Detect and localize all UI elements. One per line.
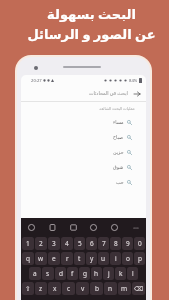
button[interactable]: More options — [131, 223, 140, 232]
button[interactable]: i — [110, 252, 121, 265]
button[interactable]: شوق — [21, 160, 146, 175]
staticText: 84% — [129, 78, 138, 84]
staticText: l — [132, 269, 134, 278]
staticText: 9 — [126, 239, 130, 248]
staticText: ابحث في المحادثات — [89, 90, 128, 97]
staticText: 7 — [102, 239, 106, 248]
staticText: حب — [116, 180, 124, 186]
staticText: q — [26, 254, 30, 263]
staticText: 3 — [52, 239, 56, 248]
button[interactable]: 8 — [110, 237, 121, 250]
staticText: 20:27 — [31, 78, 42, 84]
button[interactable]: 1 — [22, 237, 34, 250]
button[interactable]: 2 — [35, 237, 47, 250]
staticText: ⌫ — [134, 285, 144, 293]
button[interactable]: v — [76, 282, 89, 295]
button[interactable]: l — [127, 267, 138, 280]
button[interactable]: حزين — [21, 145, 146, 160]
staticText: 6 — [90, 239, 94, 248]
staticText: i — [115, 254, 117, 263]
button[interactable]: 7 — [98, 237, 109, 250]
button[interactable]: Keyboard tool — [89, 223, 98, 232]
button[interactable]: j — [103, 267, 114, 280]
button[interactable]: مساء — [21, 115, 146, 130]
button[interactable]: Keyboard tool — [110, 223, 119, 232]
button[interactable]: Keyboard tool — [48, 223, 57, 232]
staticText: شوق — [113, 165, 124, 171]
staticText: 5 — [78, 239, 82, 248]
staticText: البحث بسهولة — [47, 5, 136, 23]
button[interactable]: صباح — [21, 130, 146, 145]
staticText: a — [33, 269, 37, 278]
staticText: ⇧ — [25, 285, 31, 293]
button[interactable]: ⌫ — [132, 282, 145, 295]
button[interactable]: 0 — [134, 237, 145, 250]
staticText: m — [121, 284, 128, 293]
button[interactable]: 4 — [61, 237, 73, 250]
button[interactable]: c — [62, 282, 75, 295]
button[interactable]: t — [74, 252, 85, 265]
staticText: z — [39, 284, 43, 293]
staticText: h — [94, 269, 99, 278]
button[interactable]: y — [86, 252, 97, 265]
staticText: n — [108, 284, 113, 293]
button[interactable]: 6 — [86, 237, 97, 250]
button[interactable]: g — [79, 267, 90, 280]
button[interactable]: 9 — [122, 237, 133, 250]
staticText: مساء — [113, 120, 124, 126]
button[interactable]: 5 — [74, 237, 85, 250]
staticText: f — [71, 269, 74, 278]
button[interactable]: ⇧ — [22, 282, 34, 295]
staticText: عن الصور و الرسائل — [27, 25, 156, 43]
button[interactable]: حب — [21, 175, 146, 190]
staticText: c — [67, 284, 71, 293]
button[interactable]: k — [115, 267, 126, 280]
button[interactable]: h — [91, 267, 102, 280]
staticText: d — [59, 269, 63, 278]
staticText: 0 — [138, 239, 142, 248]
button[interactable]: s — [42, 267, 54, 280]
button[interactable]: e — [48, 252, 60, 265]
button[interactable]: d — [55, 267, 66, 280]
staticText: 1 — [26, 239, 30, 248]
button[interactable]: z — [35, 282, 47, 295]
button[interactable]: w — [35, 252, 47, 265]
staticText: o — [126, 254, 130, 263]
staticText: 8 — [114, 239, 118, 248]
button[interactable]: b — [90, 282, 103, 295]
staticText: j — [108, 269, 110, 278]
staticText: حزين — [113, 150, 124, 156]
staticText: v — [81, 284, 85, 293]
staticText: g — [83, 269, 87, 278]
staticText: s — [46, 269, 50, 278]
button[interactable]: r — [61, 252, 73, 265]
staticText: 2 — [39, 239, 43, 248]
staticText: p — [138, 254, 142, 263]
staticText: صباح — [113, 135, 124, 141]
button[interactable]: q — [22, 252, 34, 265]
button[interactable]: o — [122, 252, 133, 265]
button[interactable]: u — [98, 252, 109, 265]
staticText: u — [101, 254, 106, 263]
staticText: عمليات البحث الشائعة — [21, 106, 135, 111]
button[interactable]: n — [104, 282, 117, 295]
staticText: x — [53, 284, 57, 293]
staticText: w — [38, 254, 44, 263]
staticText: r — [66, 254, 69, 263]
button[interactable]: 3 — [48, 237, 60, 250]
staticText: t — [78, 254, 81, 263]
staticText: 4 — [65, 239, 69, 248]
button[interactable]: x — [48, 282, 61, 295]
button[interactable]: a — [29, 267, 41, 280]
button[interactable]: Keyboard tool — [69, 223, 78, 232]
button[interactable]: m — [118, 282, 131, 295]
staticText: b — [95, 284, 99, 293]
button[interactable]: f — [67, 267, 78, 280]
button[interactable]: p — [134, 252, 145, 265]
staticText: y — [90, 254, 94, 263]
staticText: e — [52, 254, 56, 263]
button[interactable]: Back — [132, 89, 141, 98]
staticText: k — [119, 269, 123, 278]
button[interactable]: Keyboard tool — [27, 223, 36, 232]
